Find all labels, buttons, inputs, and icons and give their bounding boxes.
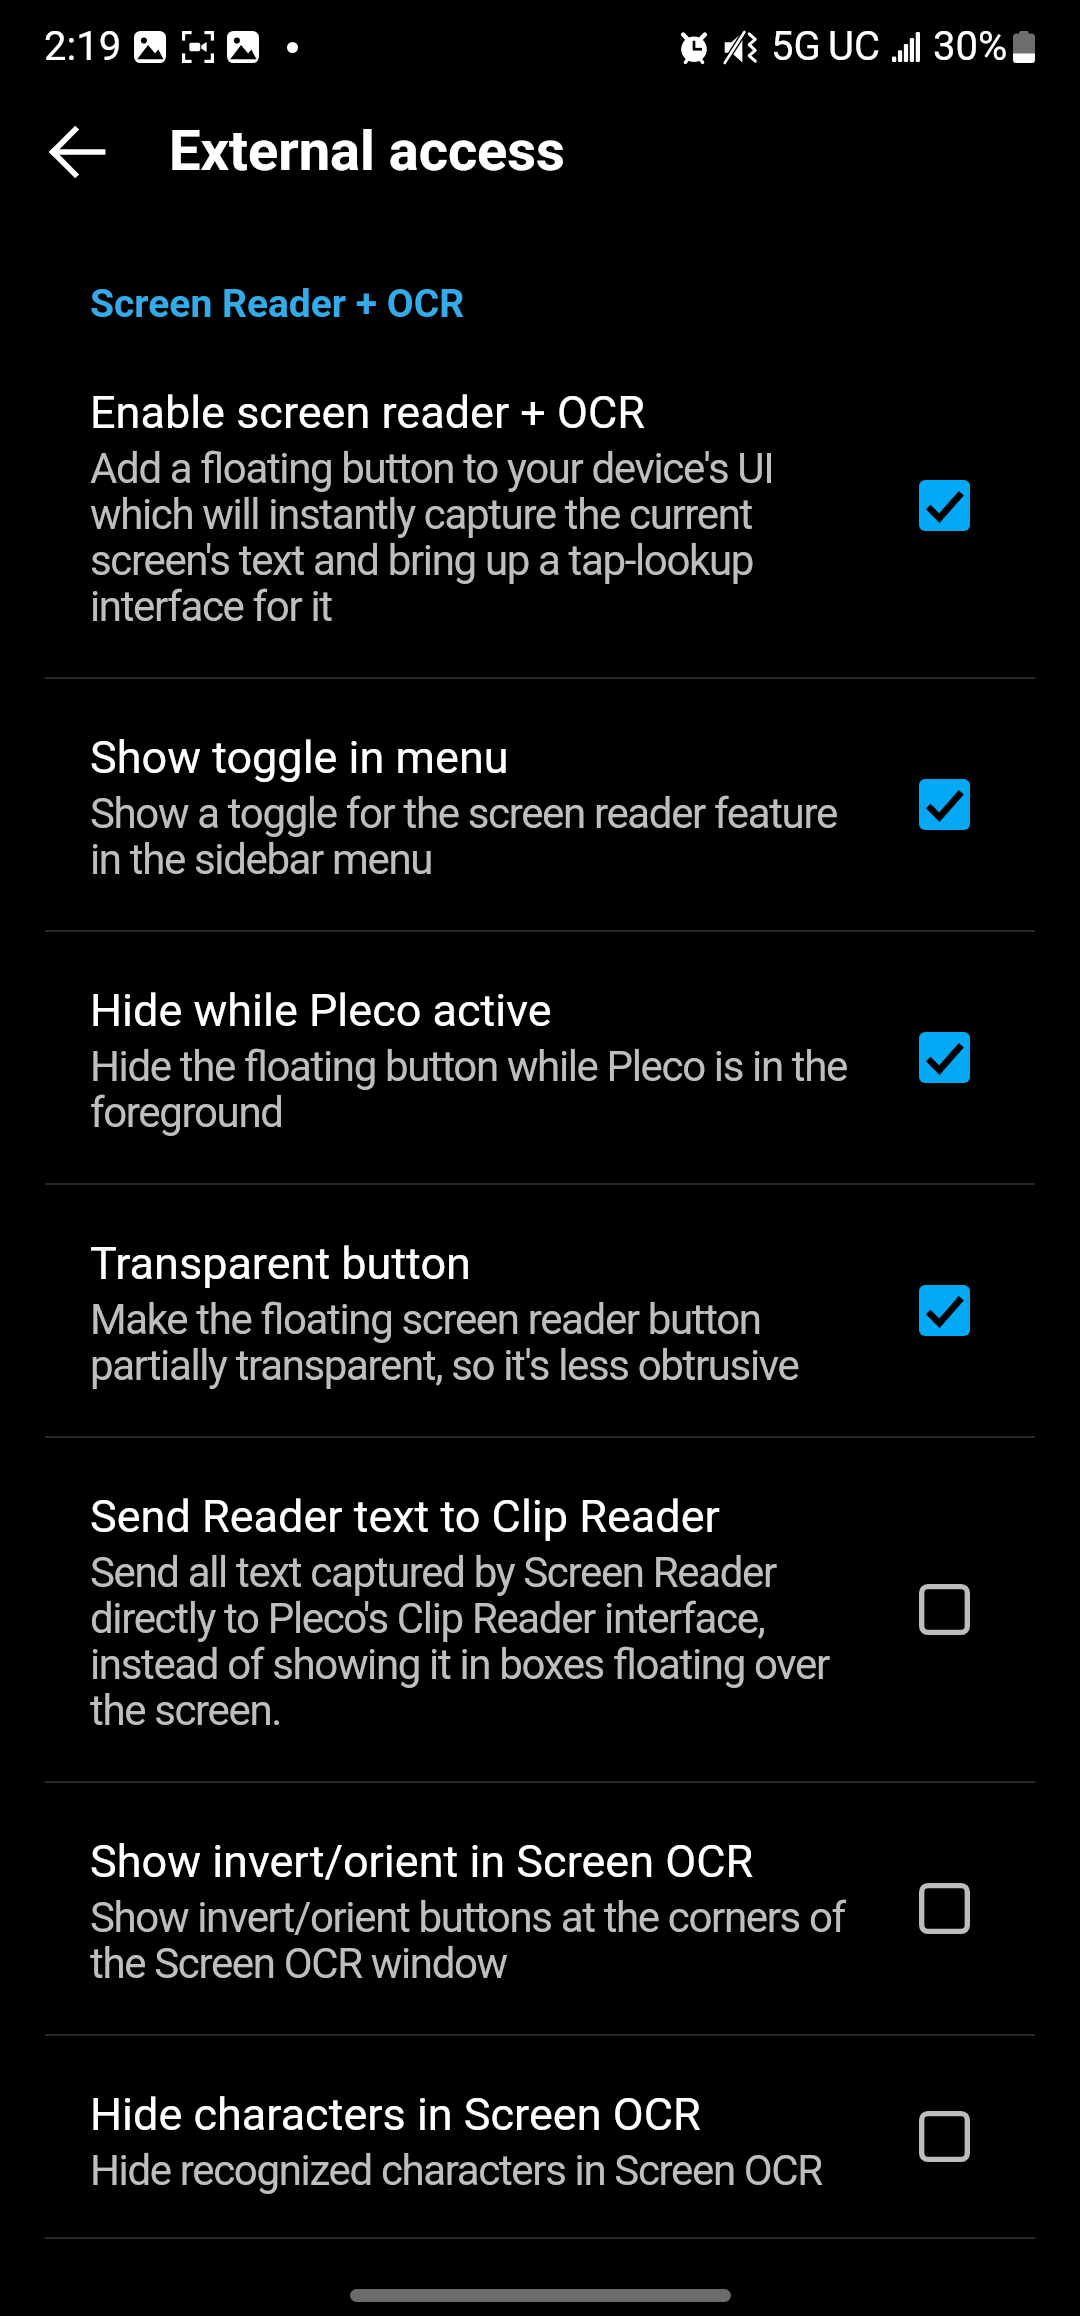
button[interactable]: Show invert/orient in Screen OCR [0,1783,1080,2034]
staticText: Show toggle in menu [90,732,509,784]
staticText: Show a toggle for the screen reader feat… [90,792,847,884]
button[interactable]: Send Reader text to Clip Reader [0,1438,1080,1781]
staticText: 30% [933,25,1008,69]
button[interactable]: Hide while Pleco active [0,932,1080,1183]
staticText: Send Reader text to Clip Reader [90,1491,720,1543]
staticText: Hide recognized characters in Screen OCR [90,2149,822,2195]
staticText: Send all text captured by Screen Reader … [90,1551,847,1735]
staticText: Hide while Pleco active [90,985,552,1037]
staticText: Enable screen reader + OCR [90,387,645,439]
staticText: Add a floating button to your device's U… [90,447,847,631]
button[interactable]: Transparent button [0,1185,1080,1436]
button[interactable]: Enable screen reader + OCR [0,334,1080,677]
button[interactable]: Show toggle in menu [0,679,1080,930]
staticText: Hide characters in Screen OCR [90,2089,701,2141]
staticText: 2:19 [44,25,122,69]
staticText: UC [828,25,880,69]
staticText: Make the floating screen reader button p… [90,1298,847,1390]
staticText: Screen Reader + OCR [90,282,465,326]
staticText: 5G [771,25,821,69]
staticText: Show invert/orient in Screen OCR [90,1836,754,1888]
staticText: Transparent button [90,1238,471,1290]
staticText: Show invert/orient buttons at the corner… [90,1896,847,1988]
button[interactable]: Hide characters in Screen OCR [0,2036,1080,2237]
staticText: External access [169,121,565,183]
button[interactable]: Back [26,100,130,204]
staticText: Hide the floating button while Pleco is … [90,1045,847,1137]
